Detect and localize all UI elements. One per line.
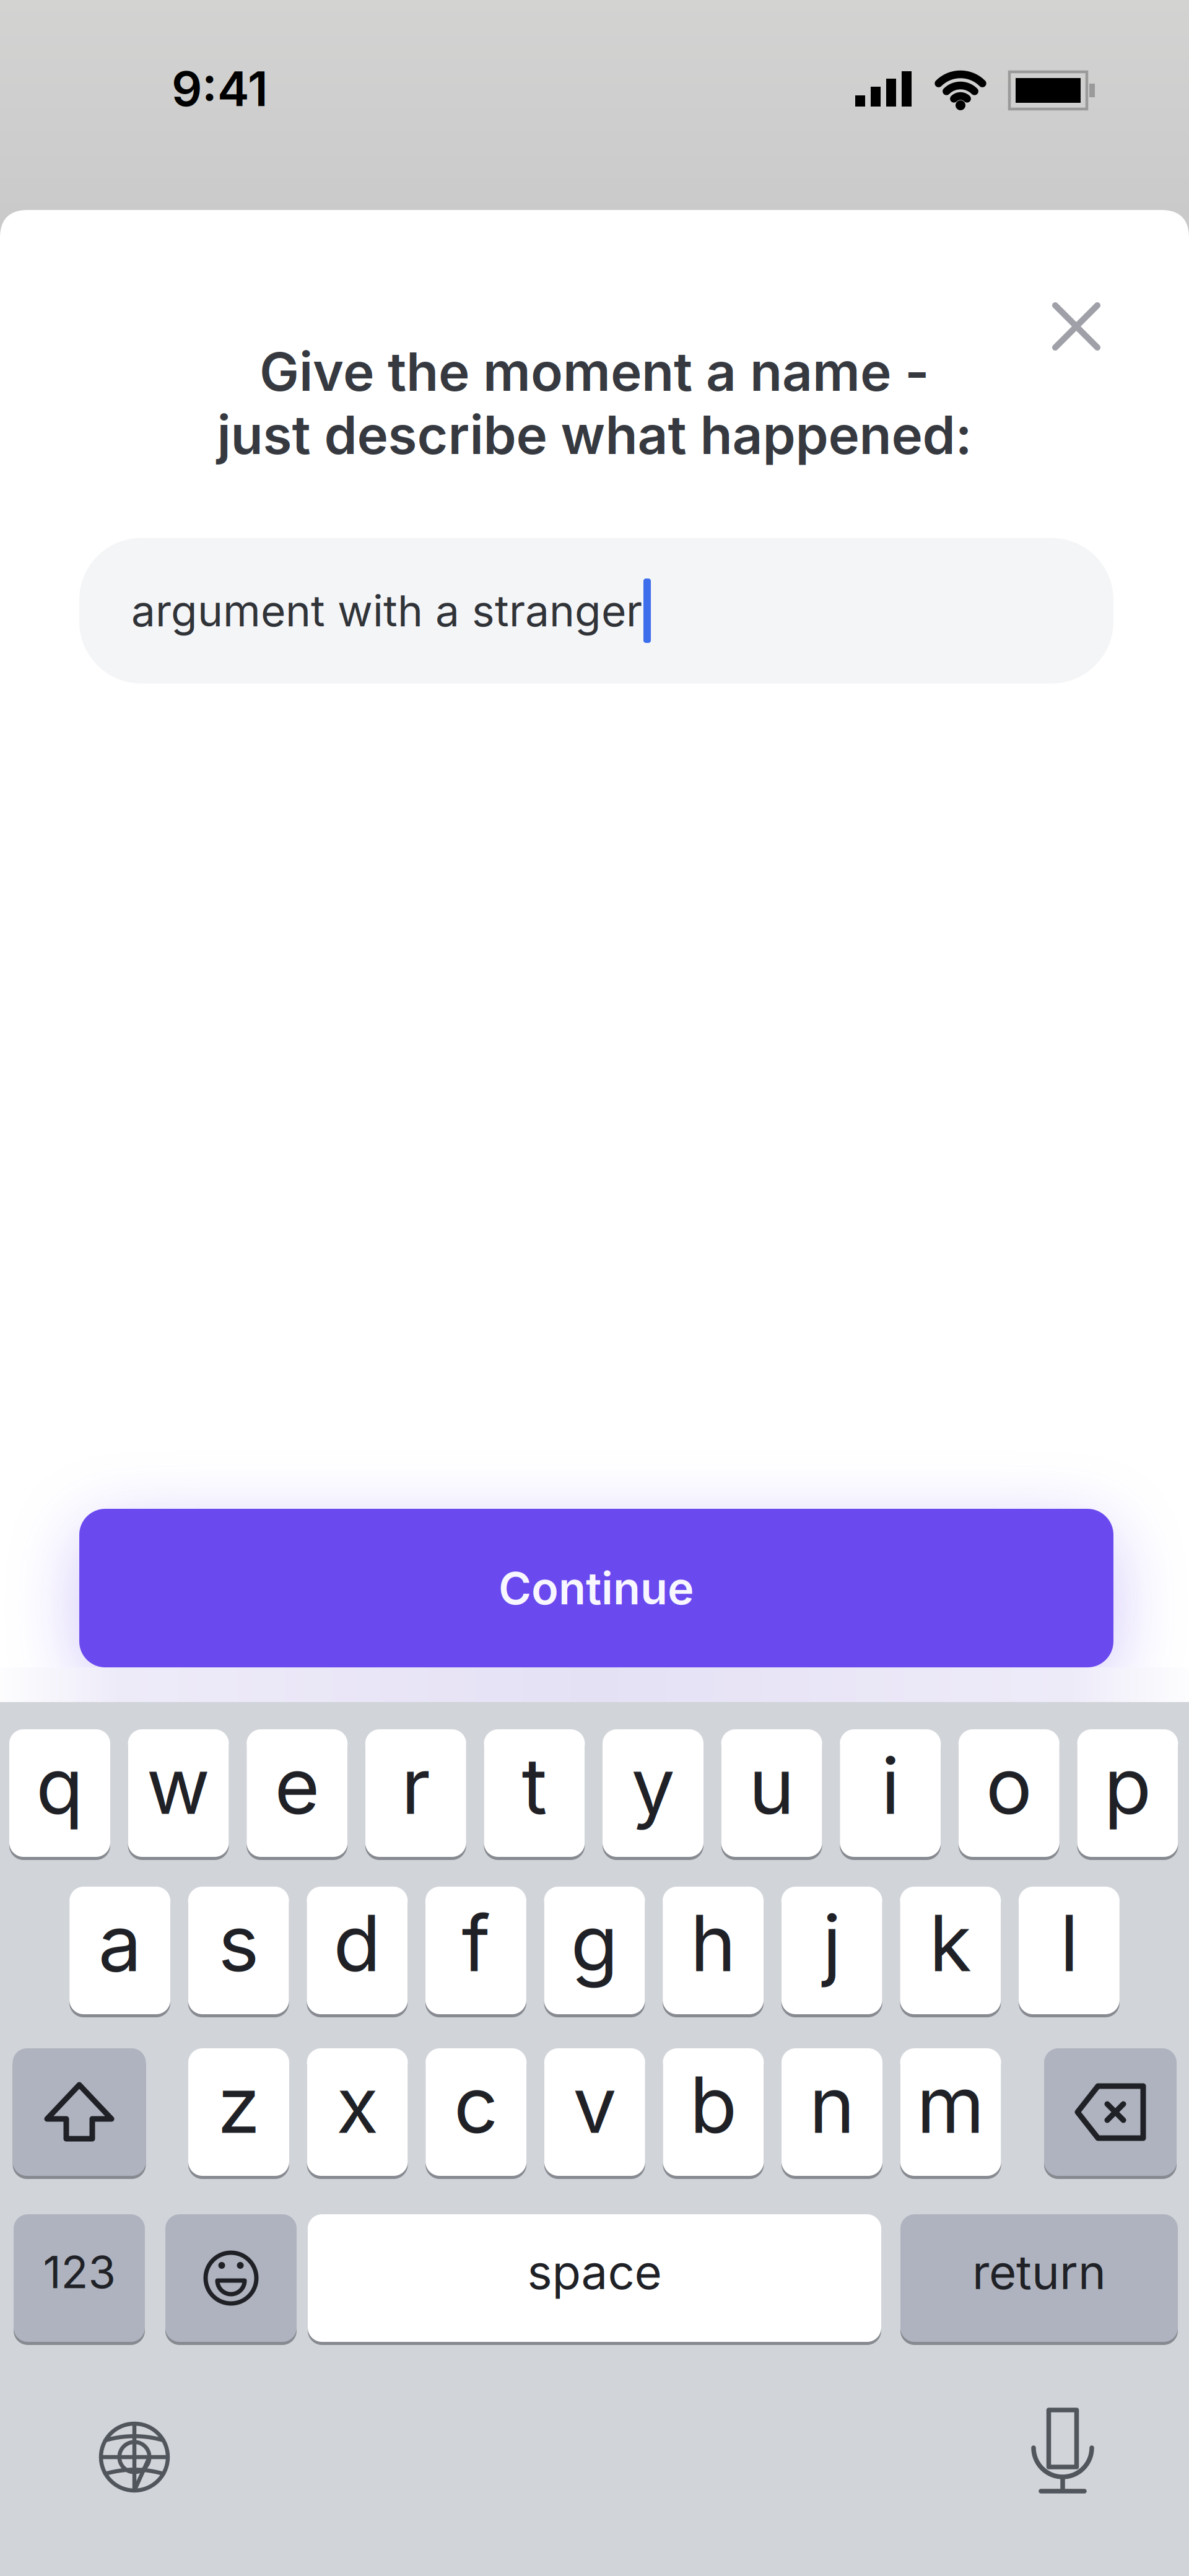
staticText: d bbox=[333, 1897, 381, 1989]
button[interactable]: r bbox=[365, 1729, 466, 1857]
staticText: z bbox=[217, 2059, 260, 2150]
button[interactable]: d bbox=[307, 1887, 408, 2014]
staticText: r bbox=[401, 1740, 430, 1832]
staticText: q bbox=[36, 1740, 84, 1832]
staticText: Continue bbox=[499, 1562, 694, 1614]
button[interactable]: i bbox=[840, 1729, 941, 1857]
staticText: argument with a stranger bbox=[131, 585, 642, 636]
button[interactable]: m bbox=[900, 2048, 1001, 2176]
button[interactable]: Close bbox=[1033, 283, 1120, 370]
button[interactable]: a bbox=[69, 1887, 170, 2014]
button[interactable]: o bbox=[959, 1729, 1059, 1857]
staticText: just describe what happened: bbox=[217, 404, 972, 466]
button[interactable]: Delete bbox=[1044, 2048, 1177, 2176]
button[interactable]: q bbox=[9, 1729, 110, 1857]
button[interactable]: 123 bbox=[14, 2214, 145, 2342]
staticText: 123 bbox=[43, 2246, 115, 2298]
staticText: x bbox=[336, 2059, 378, 2150]
button[interactable]: Moment name bbox=[79, 538, 1113, 683]
staticText: space bbox=[527, 2244, 662, 2300]
button[interactable]: j bbox=[781, 1887, 882, 2014]
button[interactable]: n bbox=[782, 2048, 882, 2176]
staticText: j bbox=[823, 1897, 841, 1989]
button[interactable]: b bbox=[663, 2048, 764, 2176]
staticText: o bbox=[986, 1740, 1032, 1832]
staticText: w bbox=[147, 1740, 210, 1832]
button[interactable]: p bbox=[1077, 1729, 1178, 1857]
staticText: v bbox=[573, 2059, 616, 2150]
button[interactable]: x bbox=[307, 2048, 408, 2176]
staticText: g bbox=[571, 1897, 618, 1989]
button[interactable]: f bbox=[425, 1887, 526, 2014]
staticText: k bbox=[929, 1897, 972, 1989]
staticText: i bbox=[881, 1740, 900, 1832]
staticText: e bbox=[274, 1740, 320, 1832]
staticText: 9:41 bbox=[172, 60, 268, 117]
staticText: c bbox=[454, 2059, 498, 2150]
staticText: y bbox=[631, 1740, 675, 1832]
staticText: p bbox=[1104, 1740, 1151, 1832]
button[interactable]: space bbox=[308, 2214, 881, 2342]
button[interactable]: Continue bbox=[79, 1509, 1113, 1667]
staticText: t bbox=[522, 1740, 547, 1832]
button[interactable]: k bbox=[900, 1887, 1001, 2014]
button[interactable]: e bbox=[247, 1729, 348, 1857]
staticText: n bbox=[809, 2059, 855, 2150]
button[interactable]: s bbox=[188, 1887, 289, 2014]
button[interactable]: z bbox=[188, 2048, 289, 2176]
button[interactable]: c bbox=[426, 2048, 527, 2176]
button[interactable]: Shift bbox=[13, 2048, 146, 2176]
button[interactable]: u bbox=[721, 1729, 822, 1857]
staticText: f bbox=[462, 1897, 490, 1989]
staticText: h bbox=[690, 1897, 736, 1989]
staticText: a bbox=[98, 1897, 142, 1989]
staticText: u bbox=[749, 1740, 795, 1832]
staticText: return bbox=[972, 2244, 1106, 2300]
button[interactable]: w bbox=[128, 1729, 229, 1857]
button[interactable]: t bbox=[484, 1729, 585, 1857]
staticText: m bbox=[917, 2059, 985, 2150]
button[interactable]: g bbox=[544, 1887, 645, 2014]
button[interactable]: l bbox=[1019, 1887, 1120, 2014]
staticText: l bbox=[1060, 1897, 1078, 1989]
staticText: s bbox=[218, 1897, 259, 1989]
button[interactable]: h bbox=[663, 1887, 764, 2014]
button[interactable]: Next keyboard bbox=[91, 2414, 178, 2500]
staticText: Give the moment a name - bbox=[259, 340, 930, 403]
button[interactable]: Dictation bbox=[1013, 2397, 1112, 2508]
button[interactable]: y bbox=[603, 1729, 703, 1857]
button[interactable]: return bbox=[900, 2214, 1178, 2342]
staticText: b bbox=[689, 2059, 737, 2150]
button[interactable]: v bbox=[544, 2048, 645, 2176]
button[interactable]: Emoji bbox=[165, 2214, 297, 2342]
